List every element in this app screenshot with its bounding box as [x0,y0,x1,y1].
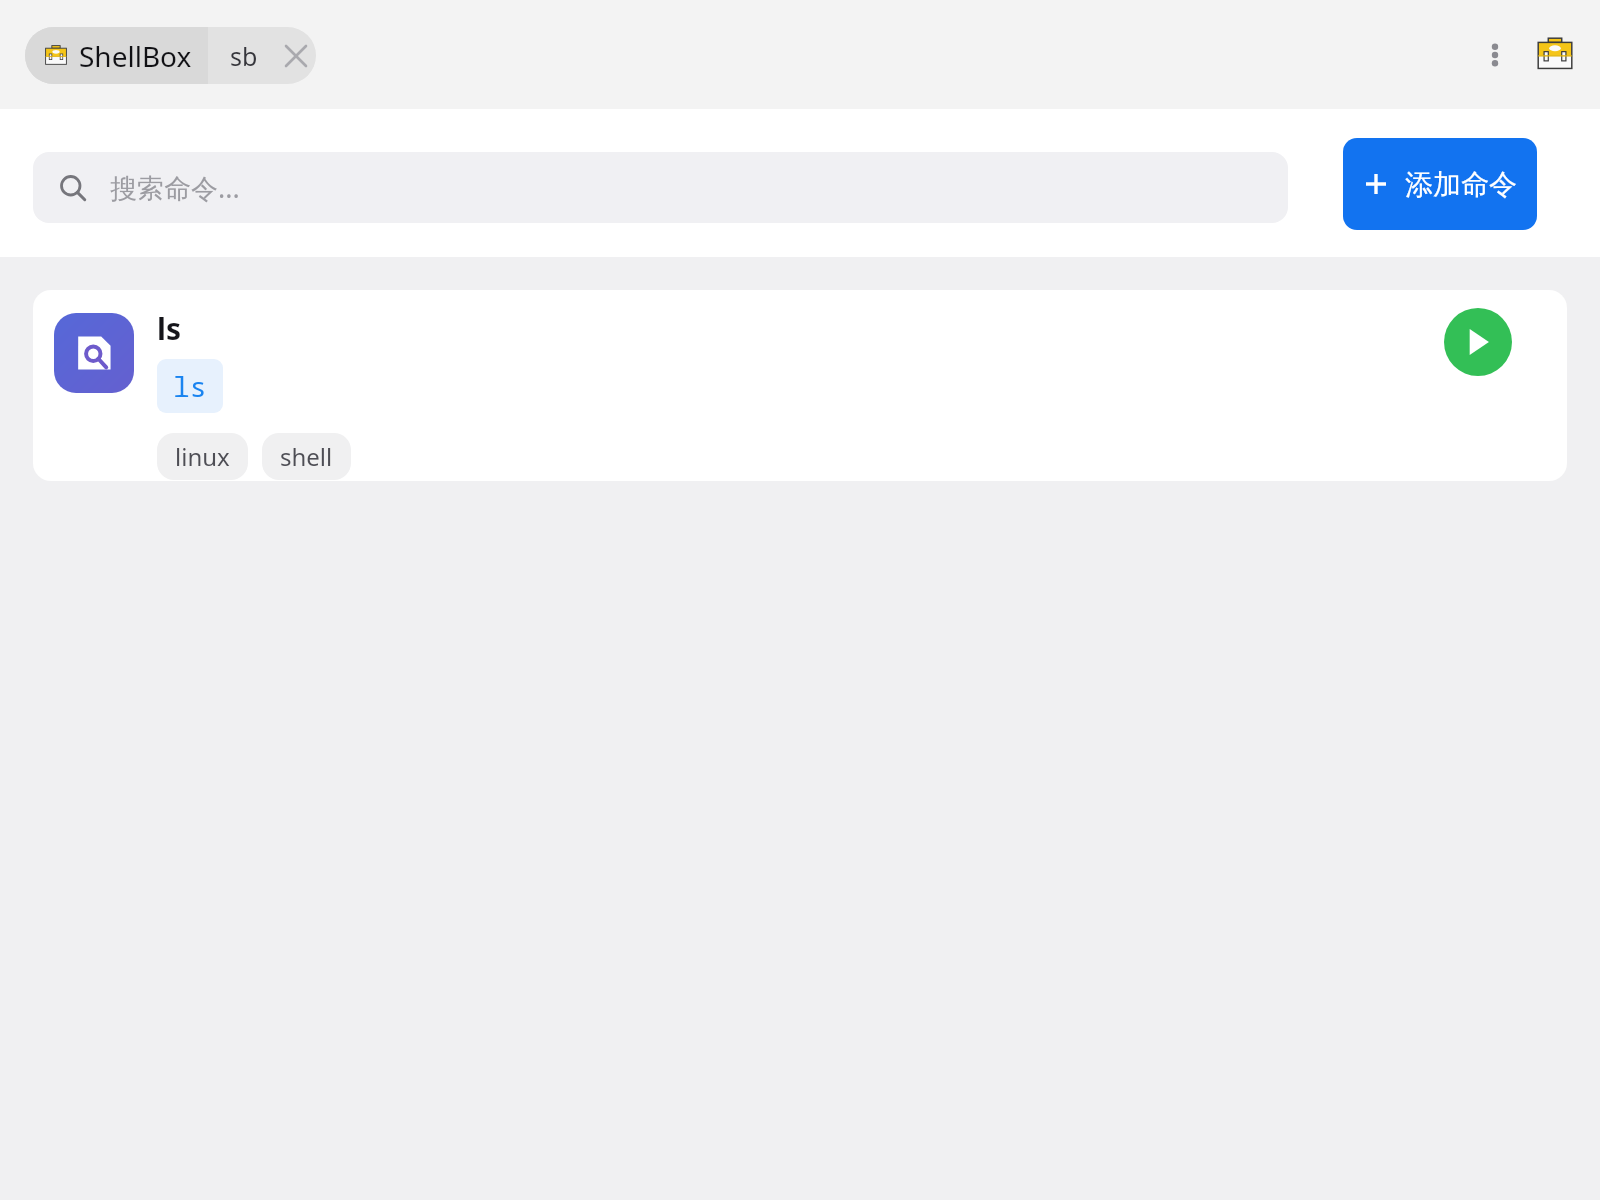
staticText: 搜索命令... [110,169,240,206]
button[interactable]: 添加命令 [1343,138,1537,230]
button[interactable]: 搜索命令... [33,152,1288,223]
button[interactable]: ls [33,290,1567,481]
button[interactable]: linux [157,433,248,480]
button[interactable]: ShellBox extension [1532,32,1578,78]
staticText: ls [173,367,207,405]
staticText: linux [175,440,230,473]
staticText: ShellBox [79,37,192,75]
staticText: shell [280,440,333,473]
staticText: sb [230,39,258,73]
button[interactable]: Run command [1444,308,1512,376]
button[interactable]: More options [1472,32,1518,78]
staticText: ls [157,308,181,349]
button[interactable]: ShellBox [25,27,316,84]
staticText: 添加命令 [1405,167,1517,202]
button[interactable]: shell [262,433,351,480]
button[interactable]: Close tab [276,36,316,76]
